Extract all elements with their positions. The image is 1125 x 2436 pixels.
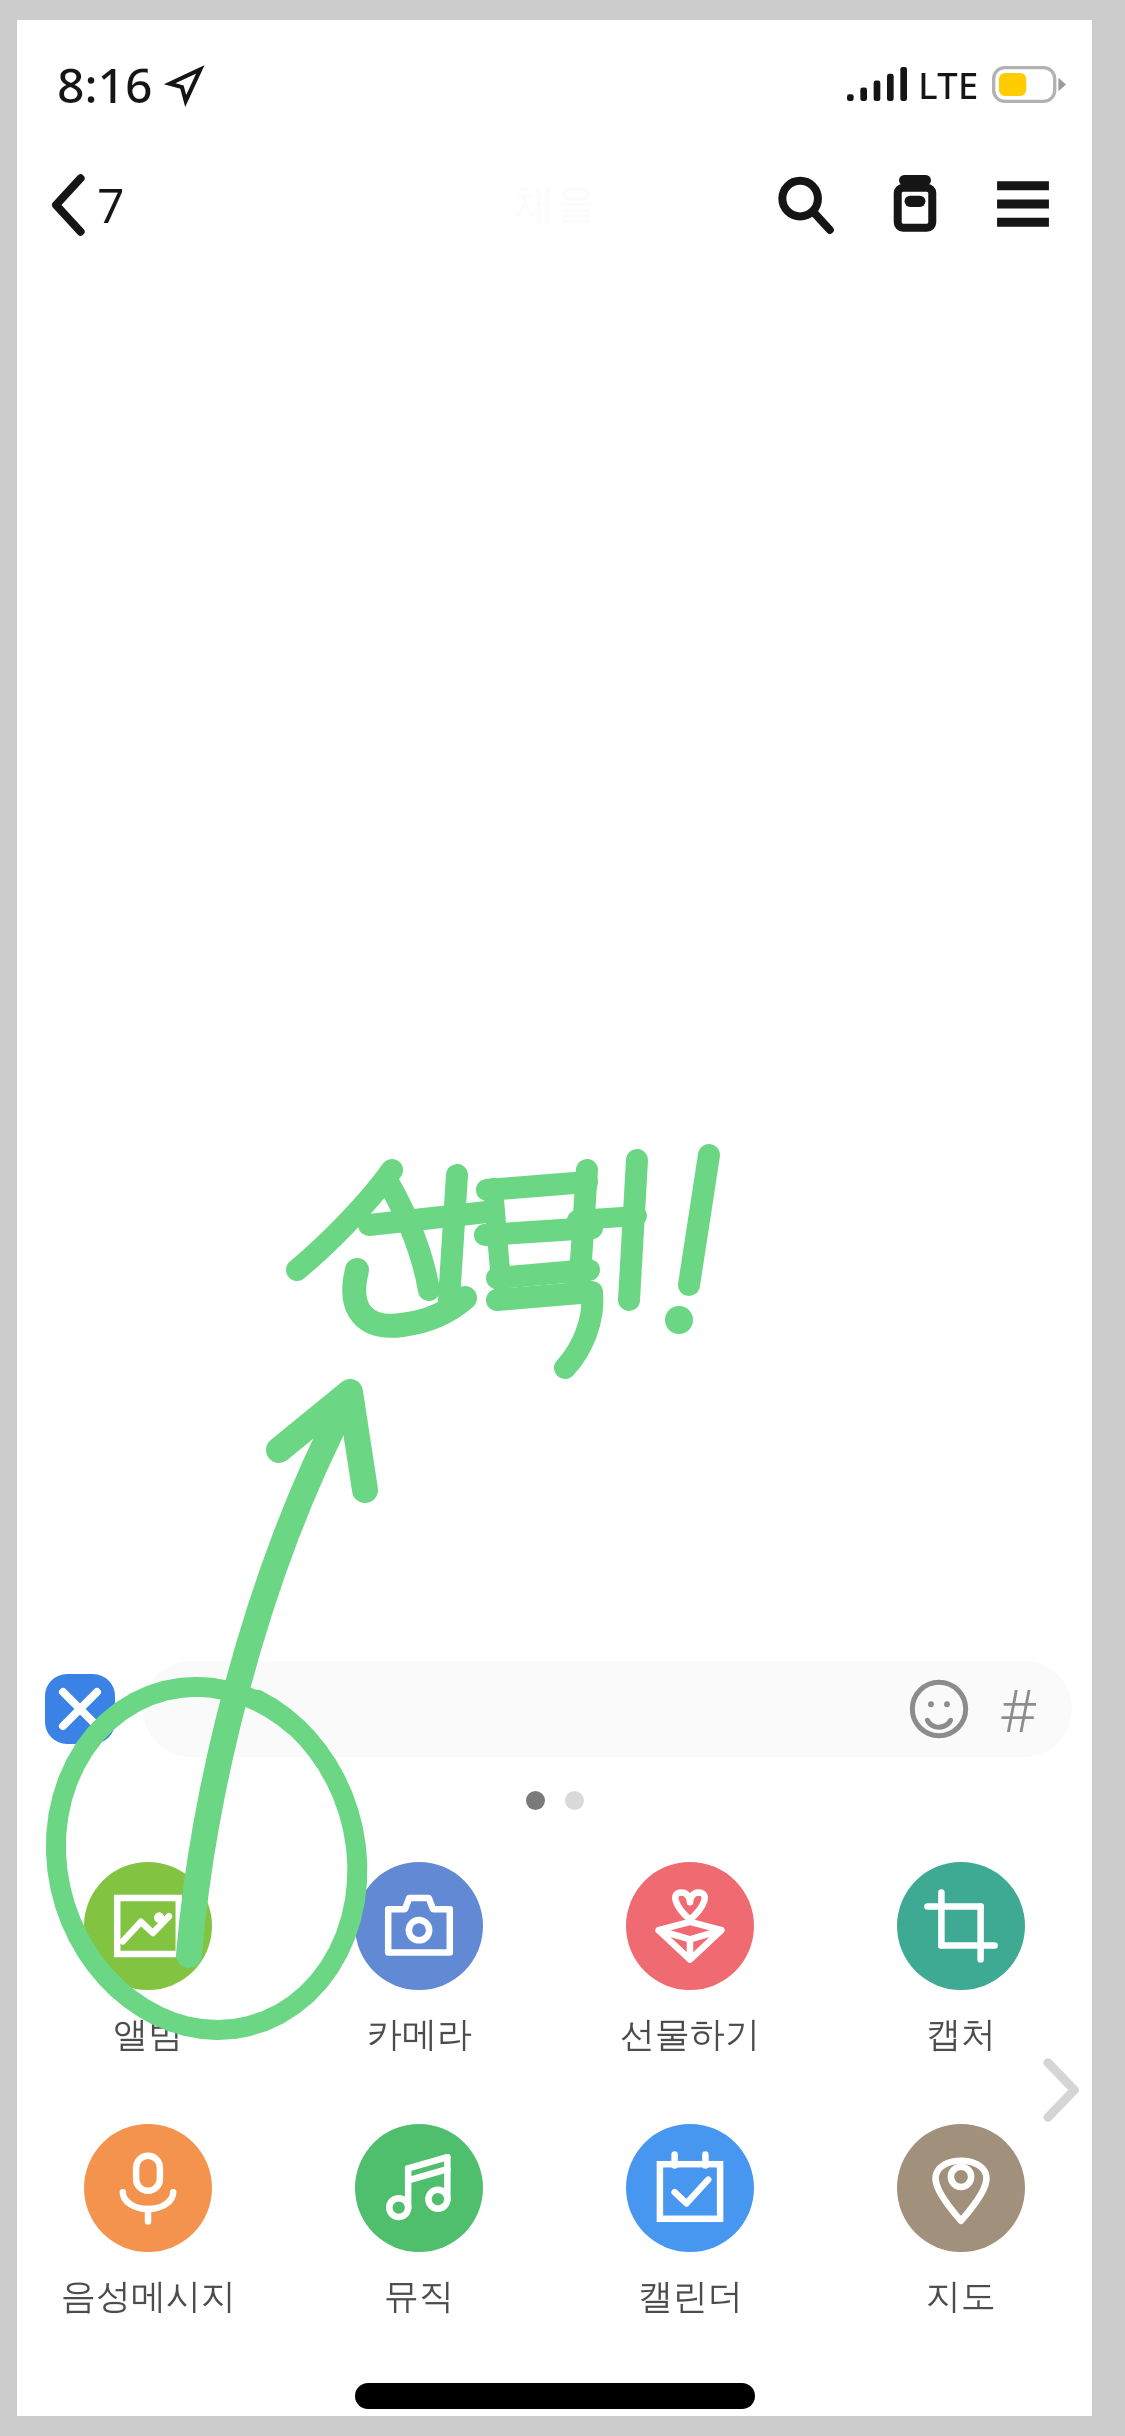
staticText: 카메라 (367, 2012, 472, 2056)
button[interactable]: 지도 (852, 2124, 1070, 2318)
button[interactable]: Close (45, 1674, 115, 1744)
staticText: LTE (918, 59, 979, 109)
button[interactable]: Menu (980, 161, 1066, 247)
staticText: 7 (97, 172, 125, 237)
button[interactable]: 뮤직 (310, 2124, 528, 2318)
button[interactable]: Hashtag (143, 1661, 1072, 1757)
button[interactable]: 앨범 (39, 1862, 257, 2056)
button[interactable]: 캡처 (852, 1862, 1070, 2056)
staticText: 선물하기 (620, 2012, 760, 2056)
button[interactable]: 음성메시지 (39, 2124, 257, 2318)
button[interactable]: Archive (872, 161, 958, 247)
staticText: 지도 (926, 2274, 996, 2318)
staticText: # (1000, 1670, 1038, 1749)
button[interactable]: Hashtag (1000, 1670, 1038, 1749)
button[interactable]: 캘린더 (581, 2124, 799, 2318)
button[interactable]: Next page (1040, 2052, 1084, 2128)
staticText: 앨범 (113, 2012, 183, 2056)
button[interactable]: 카메라 (310, 1862, 528, 2056)
staticText: 음성메시지 (61, 2274, 236, 2318)
staticText: 뮤직 (384, 2274, 454, 2318)
button[interactable]: 7 (17, 162, 145, 247)
staticText: 캘린더 (638, 2274, 743, 2318)
staticText: 캡처 (926, 2012, 996, 2056)
staticText: 8:16 (57, 52, 153, 117)
button[interactable]: 선물하기 (581, 1862, 799, 2056)
button[interactable]: Search (762, 161, 848, 247)
